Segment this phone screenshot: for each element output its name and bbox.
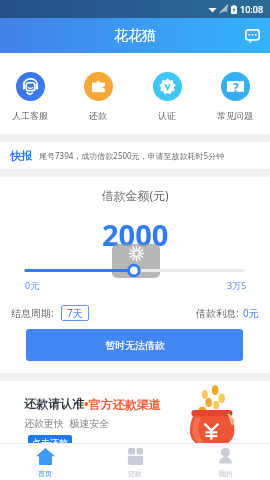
button[interactable]: 认证 xyxy=(149,72,185,121)
button[interactable]: 我的 xyxy=(180,444,270,480)
staticText: 结息周期: xyxy=(11,306,54,320)
staticText: 快报 xyxy=(10,149,32,163)
staticText: 首页 xyxy=(38,469,52,478)
staticText: 0元 xyxy=(25,279,40,291)
staticText: ? xyxy=(233,79,239,95)
staticText: 0元 xyxy=(243,306,259,320)
staticText: 常见问题 xyxy=(217,110,253,121)
button[interactable]: ? xyxy=(217,72,253,121)
button[interactable]: 还款 xyxy=(80,72,116,121)
staticText: 还款 xyxy=(89,110,107,121)
staticText: 还款 xyxy=(128,469,142,478)
staticText: 2000 xyxy=(102,215,169,254)
staticText: 3万5 xyxy=(227,279,247,291)
staticText: 暂时无法借款 xyxy=(105,339,165,352)
staticText: 借款金额(元) xyxy=(0,187,270,203)
button[interactable]: 人工客服 xyxy=(12,72,48,121)
staticText: 人工客服 xyxy=(12,110,48,121)
button[interactable]: 还款 xyxy=(90,444,180,480)
staticText: 还款更快 极速安全 xyxy=(24,416,110,430)
staticText: 7天 xyxy=(67,306,83,320)
button[interactable]: 暂时无法借款 xyxy=(26,329,243,361)
staticText: 我的 xyxy=(218,469,232,478)
staticText: •官方还款渠道 xyxy=(84,396,161,412)
button[interactable]: 首页 xyxy=(0,444,90,480)
staticText: 点击还款 xyxy=(32,437,68,448)
staticText: 10:08 xyxy=(240,3,264,15)
button[interactable]: Messages xyxy=(241,25,263,47)
staticText: 借款利息: xyxy=(196,306,239,320)
button[interactable]: 7天 xyxy=(61,305,89,321)
staticText: 认证 xyxy=(158,110,176,121)
staticText: 尾号7394，成功借款2500元，申请至放款耗时5分钟 xyxy=(39,150,225,161)
button[interactable]: 点击还款 xyxy=(28,435,72,449)
staticText: 花花猫 xyxy=(114,27,156,45)
button[interactable]: 还款请认准 xyxy=(0,381,270,480)
staticText: 还款请认准 xyxy=(24,396,84,411)
